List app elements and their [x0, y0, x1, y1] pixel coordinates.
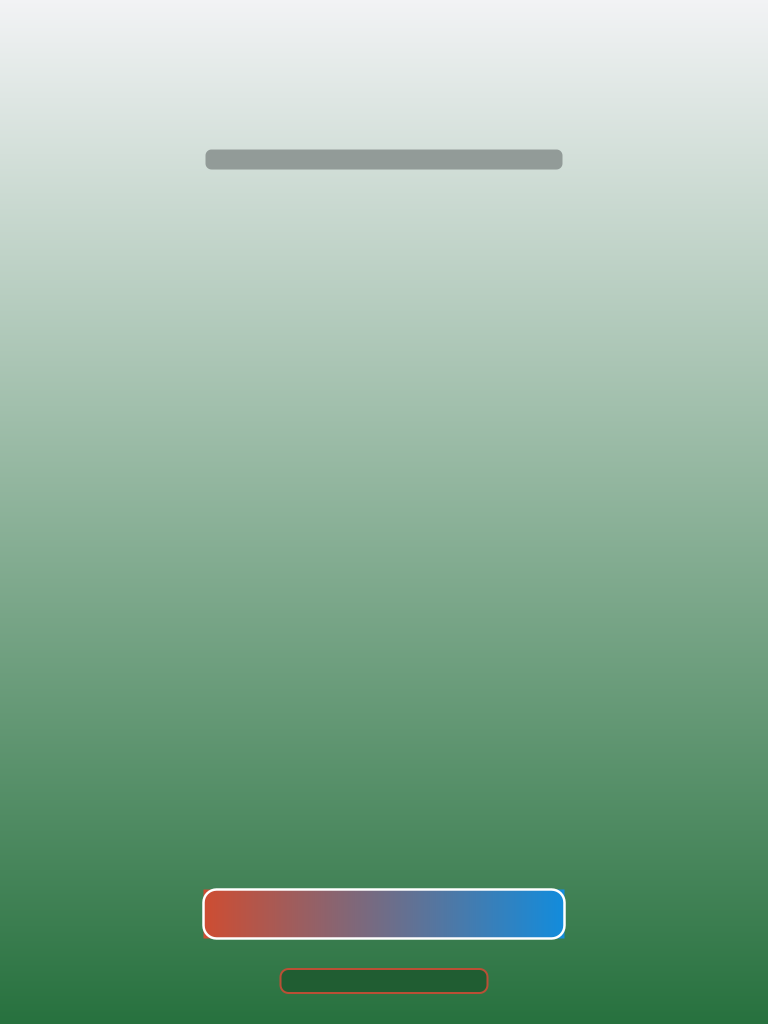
button[interactable]: Primary action — [203, 889, 564, 938]
button[interactable]: Secondary action — [280, 969, 487, 993]
button[interactable]: Track — [205, 149, 562, 169]
